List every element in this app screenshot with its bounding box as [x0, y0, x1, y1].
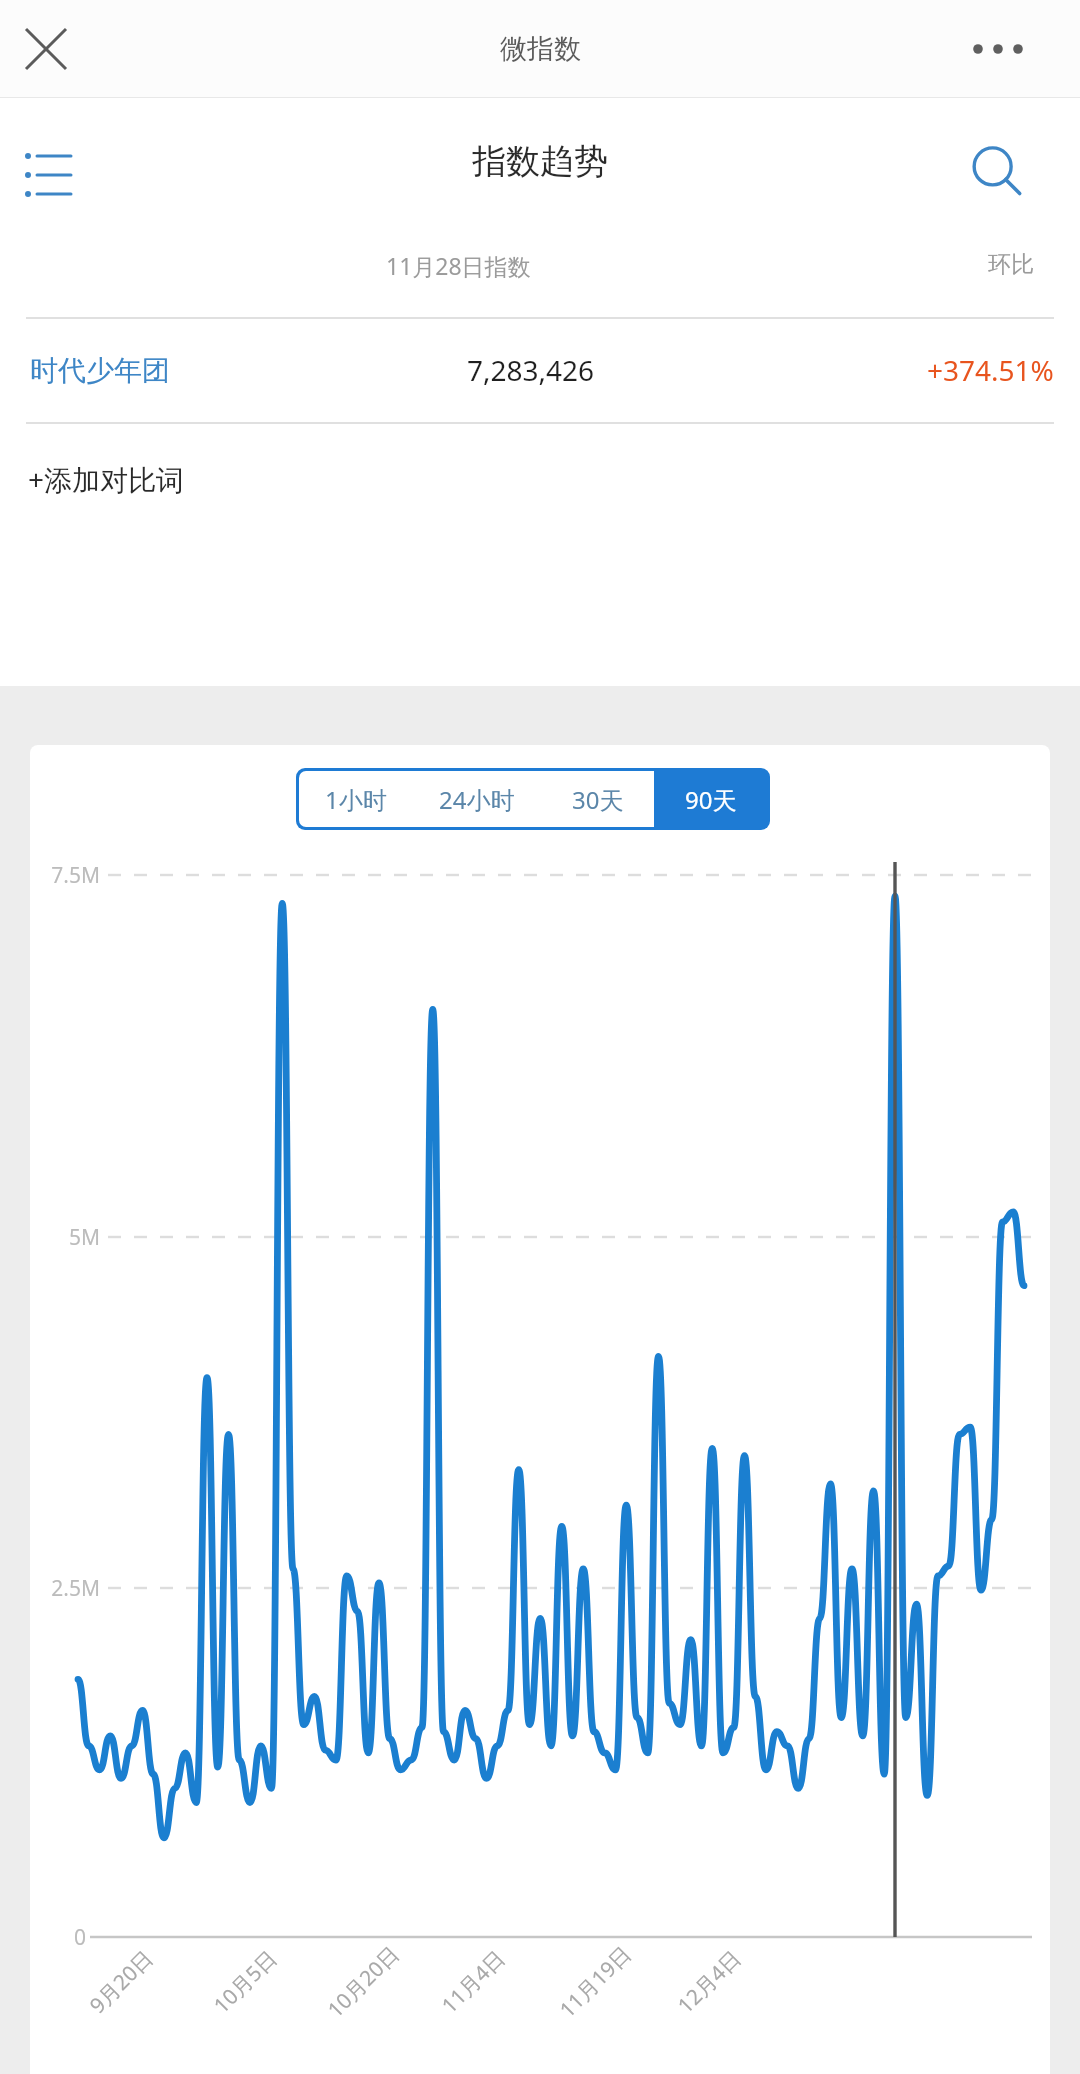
- staticText: 10月20日: [321, 1939, 406, 2024]
- staticText: 11月19日: [553, 1939, 638, 2024]
- staticText: 10月5日: [207, 1943, 284, 2020]
- button[interactable]: +添加对比词: [0, 423, 1080, 535]
- button[interactable]: 30天: [541, 771, 654, 827]
- staticText: 时代少年团: [30, 353, 170, 388]
- staticText: 环比: [734, 250, 1034, 279]
- staticText: 2.5M: [38, 1574, 100, 1603]
- staticText: 30天: [572, 783, 624, 816]
- staticText: 12月4日: [671, 1943, 748, 2020]
- staticText: 11月4日: [435, 1943, 512, 2020]
- staticText: 90天: [685, 783, 737, 816]
- staticText: 5M: [38, 1223, 100, 1252]
- staticText: 9月20日: [83, 1943, 160, 2020]
- staticText: +添加对比词: [28, 460, 185, 498]
- staticText: 0: [38, 1923, 86, 1952]
- button[interactable]: List view: [8, 135, 88, 215]
- staticText: 24小时: [439, 783, 515, 816]
- button[interactable]: 24小时: [412, 771, 541, 827]
- button[interactable]: More options: [960, 11, 1036, 87]
- staticText: 指数趋势: [472, 140, 608, 183]
- button[interactable]: 1小时: [299, 771, 412, 827]
- staticText: 微指数: [500, 32, 581, 66]
- staticText: 7.5M: [38, 861, 100, 890]
- staticText: 7,283,426: [467, 351, 595, 389]
- staticText: 11月28日指数: [386, 250, 531, 281]
- button[interactable]: Search: [952, 128, 1040, 216]
- staticText: +374.51%: [927, 351, 1054, 389]
- button[interactable]: 时代少年团: [0, 318, 1080, 422]
- button[interactable]: 90天: [654, 771, 767, 827]
- staticText: 1小时: [325, 783, 387, 816]
- button[interactable]: Close: [8, 11, 84, 87]
